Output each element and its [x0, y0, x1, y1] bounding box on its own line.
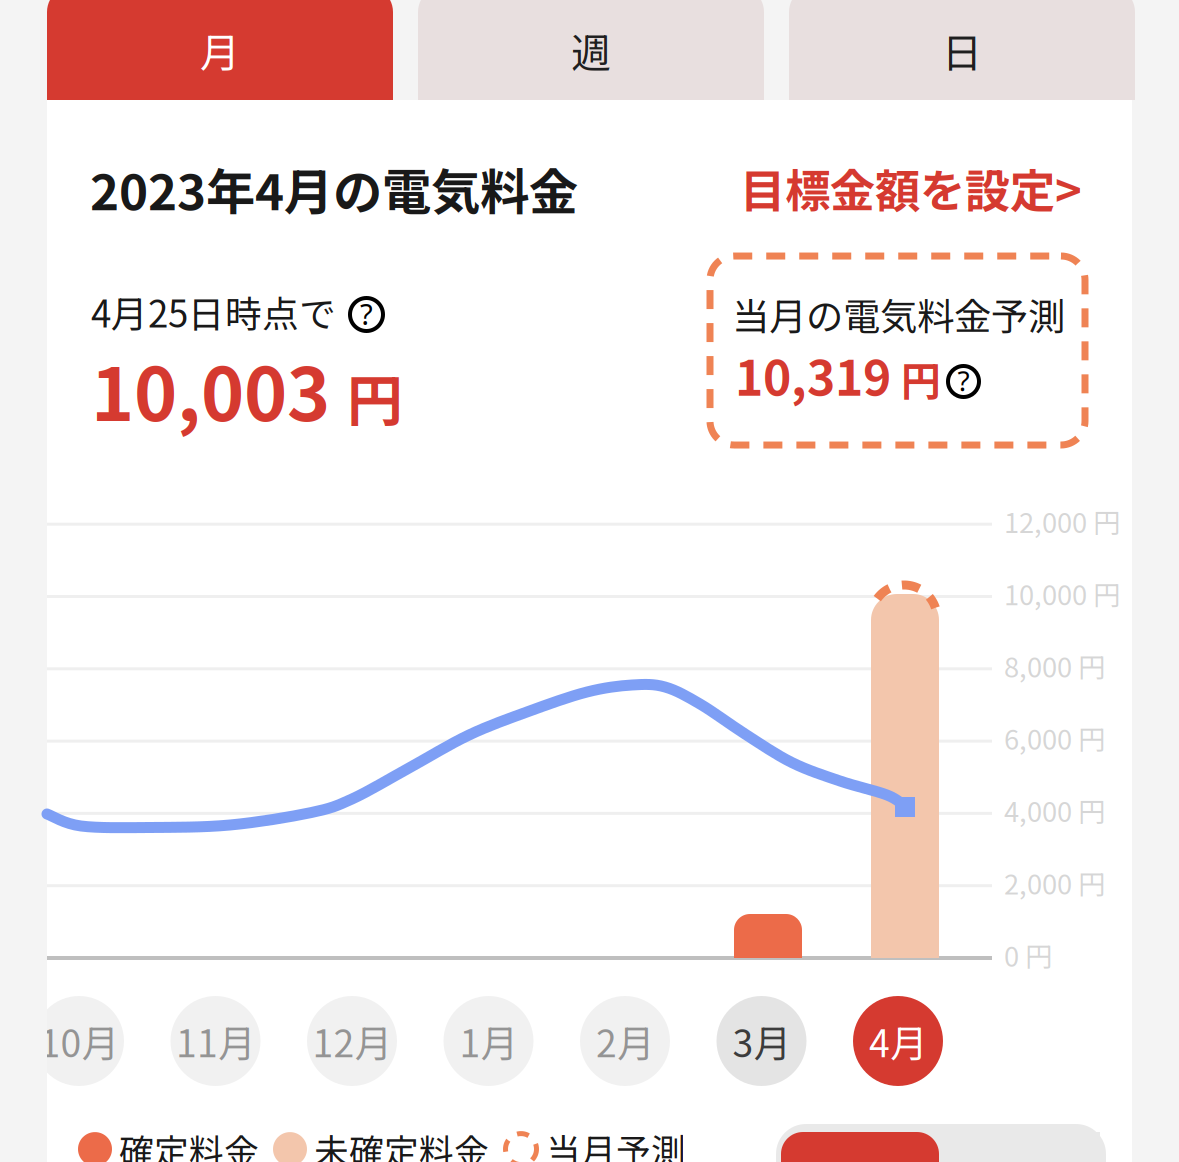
- button[interactable]: 11月: [170, 996, 260, 1086]
- staticText: 目標金額を設定>: [740, 155, 1082, 221]
- staticText: 週: [571, 21, 611, 79]
- staticText: 11月: [176, 1014, 255, 1068]
- button[interactable]: 円: [781, 1132, 939, 1162]
- staticText: 12月: [312, 1014, 391, 1068]
- button[interactable]: 12月: [307, 996, 397, 1086]
- staticText: 2023年4月の電気料金: [90, 153, 578, 224]
- staticText: 円: [347, 356, 403, 437]
- button[interactable]: 日: [789, 0, 1135, 100]
- staticText: 確定料金: [119, 1124, 259, 1162]
- staticText: 当月の電気料金予測: [732, 287, 1065, 341]
- staticText: 当月予測: [546, 1124, 686, 1162]
- staticText: 1月: [459, 1014, 517, 1068]
- staticText: 4月: [869, 1014, 927, 1068]
- button[interactable]: 2月: [580, 996, 670, 1086]
- staticText: 10月: [39, 1014, 118, 1068]
- staticText: 未確定料金: [314, 1124, 489, 1162]
- button[interactable]: 週: [418, 0, 764, 100]
- button[interactable]: 10月: [34, 996, 124, 1086]
- staticText: ?: [957, 362, 969, 399]
- button[interactable]: 4月: [853, 996, 943, 1086]
- staticText: 2,000 円: [1004, 863, 1105, 902]
- staticText: 0 円: [1004, 935, 1052, 975]
- staticText: 円: [901, 349, 941, 407]
- staticText: 月: [200, 21, 240, 79]
- staticText: 4,000 円: [1004, 790, 1105, 830]
- button[interactable]: 1月: [443, 996, 533, 1086]
- staticText: 10,000 円: [1004, 573, 1120, 613]
- button[interactable]: 3月: [716, 996, 806, 1086]
- staticText: 2月: [596, 1014, 654, 1068]
- staticText: 4月25日時点で: [91, 285, 336, 338]
- staticText: 6,000 円: [1004, 718, 1105, 758]
- button[interactable]: 月: [47, 0, 393, 100]
- staticText: 12,000 円: [1004, 501, 1120, 541]
- staticText: 8,000 円: [1004, 646, 1105, 685]
- button[interactable]: 目標金額を設定>: [740, 155, 1082, 221]
- staticText: 10,319: [735, 340, 891, 409]
- staticText: 日: [942, 21, 982, 79]
- staticText: 10,003: [91, 336, 330, 442]
- staticText: 3月: [732, 1014, 790, 1068]
- staticText: ?: [360, 294, 373, 333]
